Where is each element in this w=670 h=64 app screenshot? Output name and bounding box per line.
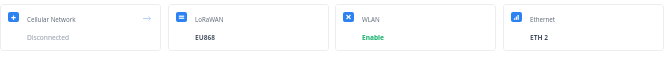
button[interactable]: Cellular network xyxy=(0,4,161,51)
staticText: Cellular Network xyxy=(27,15,76,23)
other: WLAN xyxy=(343,12,354,22)
other: Ethernet xyxy=(511,12,522,22)
button[interactable]: Ethernet xyxy=(503,4,664,51)
staticText: EU868 xyxy=(195,33,215,42)
other: Open cellular network settings xyxy=(143,16,151,21)
button[interactable]: WLAN xyxy=(335,4,496,51)
staticText: LoRaWAN xyxy=(195,15,224,23)
staticText: Disconnected xyxy=(27,33,70,42)
staticText: Enable xyxy=(362,33,384,42)
button[interactable]: LoRaWAN xyxy=(168,4,329,51)
other: LoRaWAN xyxy=(176,12,187,22)
staticText: Ethernet xyxy=(530,15,556,23)
staticText: WLAN xyxy=(362,15,380,23)
staticText: ETH 2 xyxy=(530,33,549,42)
other: Cellular network xyxy=(8,12,19,22)
